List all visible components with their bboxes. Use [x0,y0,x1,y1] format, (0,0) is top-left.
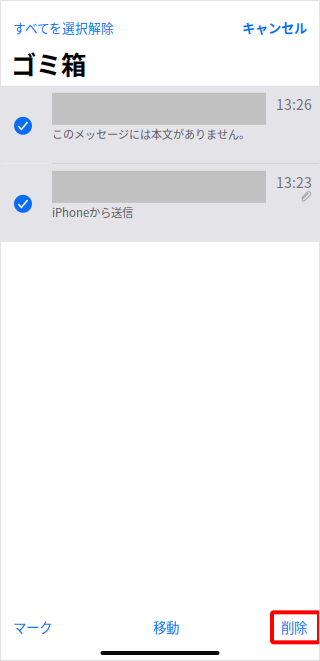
button[interactable]: 削除 [269,608,320,646]
button[interactable]: キャンセル [242,14,320,41]
button[interactable]: iPhoneから送信 [0,164,320,242]
staticText: iPhoneから送信 [52,204,133,220]
staticText: ゴミ箱 [11,45,86,82]
staticText: 削除 [281,617,307,637]
staticText: このメッセージには本文がありません。 [52,126,250,142]
staticText: すべてを選択解除 [13,18,114,37]
button[interactable]: 移動 [144,608,188,646]
button[interactable]: マーク [0,608,61,646]
button[interactable]: すべてを選択解除 [0,14,114,41]
staticText: 13:23 [276,172,312,192]
staticText: 13:26 [276,94,312,114]
staticText: キャンセル [242,18,307,37]
staticText: 移動 [153,617,179,637]
staticText: マーク [13,617,52,637]
button[interactable]: このメッセージには本文がありません。 [0,86,320,164]
